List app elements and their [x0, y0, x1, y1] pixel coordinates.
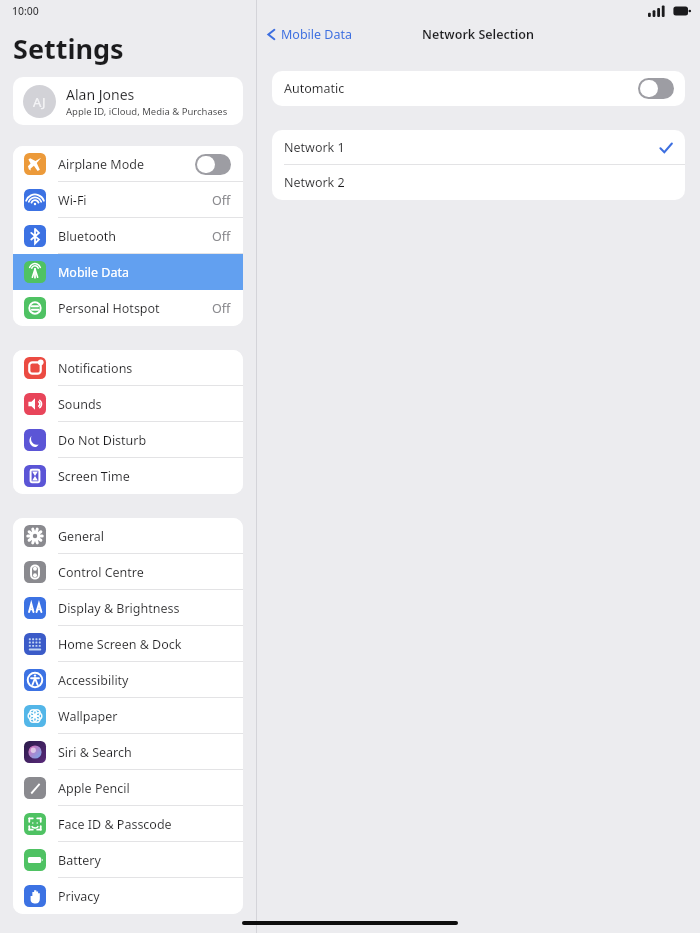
button[interactable]: General — [13, 518, 243, 554]
staticText: Settings — [13, 30, 124, 67]
staticText: Notifications — [58, 360, 231, 377]
staticText: Network 1 — [284, 139, 345, 156]
staticText: Alan Jones — [66, 85, 135, 104]
staticText: Home Screen & Dock — [58, 636, 231, 653]
button[interactable]: Face ID & Passcode — [13, 806, 243, 842]
button[interactable]: Home Screen & Dock — [13, 626, 243, 662]
button[interactable]: Privacy — [13, 878, 243, 914]
staticText: Screen Time — [58, 468, 231, 485]
staticText: Face ID & Passcode — [58, 816, 231, 833]
button[interactable]: Display & Brightness — [13, 590, 243, 626]
staticText: Network Selection — [422, 26, 535, 43]
staticText: Accessibility — [58, 672, 231, 689]
staticText: AJ — [33, 93, 46, 111]
staticText: Display & Brightness — [58, 600, 231, 617]
button[interactable]: Do Not Disturb — [13, 422, 243, 458]
button[interactable]: Toggle — [638, 78, 674, 99]
button[interactable]: Toggle — [195, 154, 231, 175]
staticText: Mobile Data — [58, 264, 231, 281]
staticText: Automatic — [284, 80, 345, 97]
staticText: Personal Hotspot — [58, 300, 212, 317]
staticText: Apple ID, iCloud, Media & Purchases — [66, 105, 228, 118]
button[interactable]: Accessibility — [13, 662, 243, 698]
staticText: Wallpaper — [58, 708, 231, 725]
button[interactable]: Automatic — [272, 71, 685, 106]
staticText: Off — [212, 300, 231, 317]
staticText: Battery — [58, 852, 231, 869]
staticText: Siri & Search — [58, 744, 231, 761]
button[interactable]: Bluetooth — [13, 218, 243, 254]
button[interactable]: Airplane Mode — [13, 146, 243, 182]
button[interactable]: Sounds — [13, 386, 243, 422]
button[interactable]: Wi-Fi — [13, 182, 243, 218]
button[interactable]: Mobile Data — [13, 254, 243, 290]
button[interactable]: Personal Hotspot — [13, 290, 243, 326]
button[interactable]: Battery — [13, 842, 243, 878]
staticText: General — [58, 528, 231, 545]
staticText: Mobile Data — [281, 26, 353, 43]
button[interactable]: Screen Time — [13, 458, 243, 494]
staticText: Apple Pencil — [58, 780, 231, 797]
button[interactable]: Network 2 — [272, 165, 685, 200]
staticText: 10:00 — [12, 4, 39, 18]
staticText: Do Not Disturb — [58, 432, 231, 449]
staticText: Off — [212, 192, 231, 209]
button[interactable]: Wallpaper — [13, 698, 243, 734]
button[interactable]: Mobile Data — [265, 26, 353, 43]
button[interactable]: Apple Pencil — [13, 770, 243, 806]
staticText: Sounds — [58, 396, 231, 413]
staticText: Privacy — [58, 888, 231, 905]
staticText: Control Centre — [58, 564, 231, 581]
staticText: Airplane Mode — [58, 156, 195, 173]
button[interactable]: AJ — [13, 77, 243, 125]
staticText: Wi-Fi — [58, 192, 212, 209]
staticText: Network 2 — [284, 174, 345, 191]
staticText: Bluetooth — [58, 228, 212, 245]
staticText: Off — [212, 228, 231, 245]
button[interactable]: Control Centre — [13, 554, 243, 590]
button[interactable]: Siri & Search — [13, 734, 243, 770]
button[interactable]: Notifications — [13, 350, 243, 386]
button[interactable]: Network 1 — [272, 130, 685, 165]
